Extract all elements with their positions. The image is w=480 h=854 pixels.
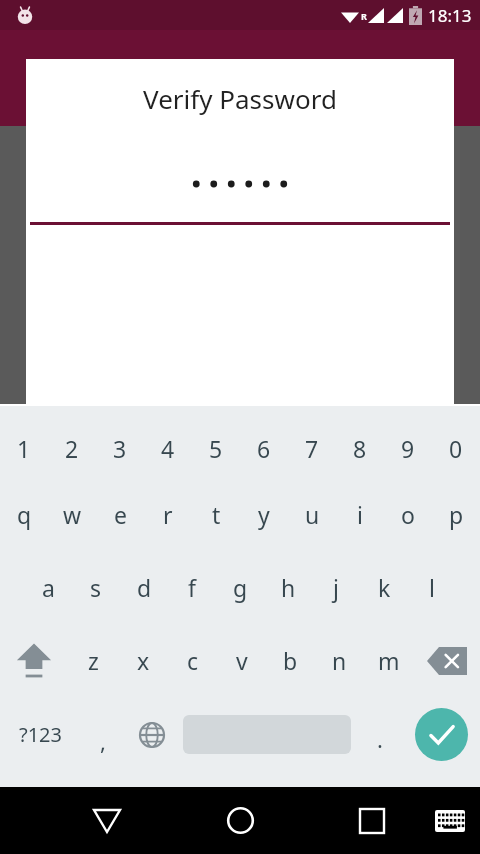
button[interactable]: 8: [336, 418, 384, 478]
staticText: j: [333, 572, 339, 603]
button[interactable]: 4: [144, 418, 192, 478]
staticText: e: [114, 499, 127, 530]
staticText: p: [449, 499, 464, 530]
button[interactable]: l: [408, 551, 456, 624]
button[interactable]: c: [168, 624, 217, 697]
staticText: s: [90, 572, 102, 603]
staticText: ?123: [19, 721, 62, 748]
button[interactable]: t: [192, 478, 240, 551]
staticText: 7: [305, 433, 319, 464]
staticText: R: [361, 10, 367, 22]
button[interactable]: Change language: [126, 697, 177, 772]
button[interactable]: Hide keyboard: [427, 787, 473, 854]
staticText: a: [42, 572, 55, 603]
button[interactable]: 1: [0, 418, 48, 478]
staticText: m: [378, 645, 400, 676]
button[interactable]: h: [264, 551, 312, 624]
button[interactable]: Shift: [0, 624, 68, 697]
button[interactable]: Backspace: [413, 624, 480, 697]
staticText: f: [188, 572, 196, 603]
button[interactable]: 5: [192, 418, 240, 478]
button[interactable]: 3: [96, 418, 144, 478]
button[interactable]: y: [240, 478, 288, 551]
button[interactable]: 0: [432, 418, 480, 478]
staticText: 18:13: [428, 4, 472, 27]
button[interactable]: m: [364, 624, 413, 697]
staticText: ,: [100, 726, 106, 756]
button[interactable]: f: [168, 551, 216, 624]
staticText: 9: [401, 433, 415, 464]
staticText: k: [378, 572, 391, 603]
button[interactable]: u: [288, 478, 336, 551]
staticText: i: [357, 499, 363, 530]
staticText: w: [63, 499, 82, 530]
button[interactable]: p: [432, 478, 480, 551]
staticText: .: [377, 724, 383, 754]
staticText: q: [17, 499, 32, 530]
button[interactable]: ?123: [0, 697, 80, 772]
button[interactable]: g: [216, 551, 264, 624]
staticText: 0: [449, 433, 463, 464]
button[interactable]: 6: [240, 418, 288, 478]
staticText: 3: [113, 433, 127, 464]
button[interactable]: 2: [48, 418, 96, 478]
button[interactable]: Done: [403, 697, 480, 772]
staticText: x: [137, 645, 150, 676]
staticText: 4: [161, 433, 175, 464]
staticText: 1: [17, 433, 31, 464]
button[interactable]: Recent apps: [347, 787, 397, 854]
staticText: g: [233, 572, 248, 603]
button[interactable]: a: [24, 551, 72, 624]
button[interactable]: Home: [213, 787, 267, 854]
staticText: 5: [209, 433, 223, 464]
staticText: d: [137, 572, 152, 603]
staticText: u: [305, 499, 320, 530]
button[interactable]: o: [384, 478, 432, 551]
staticText: 2: [65, 433, 79, 464]
button[interactable]: w: [48, 478, 96, 551]
staticText: 8: [353, 433, 367, 464]
button[interactable]: n: [315, 624, 364, 697]
button[interactable]: v: [217, 624, 266, 697]
staticText: l: [429, 572, 435, 603]
button[interactable]: e: [96, 478, 144, 551]
button[interactable]: 7: [288, 418, 336, 478]
staticText: t: [212, 499, 221, 530]
button[interactable]: d: [120, 551, 168, 624]
button[interactable]: q: [0, 478, 48, 551]
staticText: h: [281, 572, 296, 603]
staticText: o: [401, 499, 415, 530]
staticText: n: [332, 645, 347, 676]
button[interactable]: ,: [80, 697, 126, 772]
button[interactable]: j: [312, 551, 360, 624]
button[interactable]: b: [266, 624, 315, 697]
staticText: 6: [257, 433, 271, 464]
staticText: y: [258, 499, 270, 530]
button[interactable]: 9: [384, 418, 432, 478]
staticText: b: [283, 645, 298, 676]
staticText: r: [163, 499, 173, 530]
button[interactable]: x: [118, 624, 168, 697]
button[interactable]: s: [72, 551, 120, 624]
staticText: Verify Password: [26, 81, 454, 116]
button[interactable]: .: [357, 697, 403, 772]
button[interactable]: Back: [80, 787, 134, 854]
button[interactable]: k: [360, 551, 408, 624]
staticText: v: [236, 645, 248, 676]
button[interactable]: i: [336, 478, 384, 551]
button[interactable]: z: [68, 624, 118, 697]
staticText: z: [88, 645, 99, 676]
button[interactable]: r: [144, 478, 192, 551]
staticText: c: [187, 645, 199, 676]
